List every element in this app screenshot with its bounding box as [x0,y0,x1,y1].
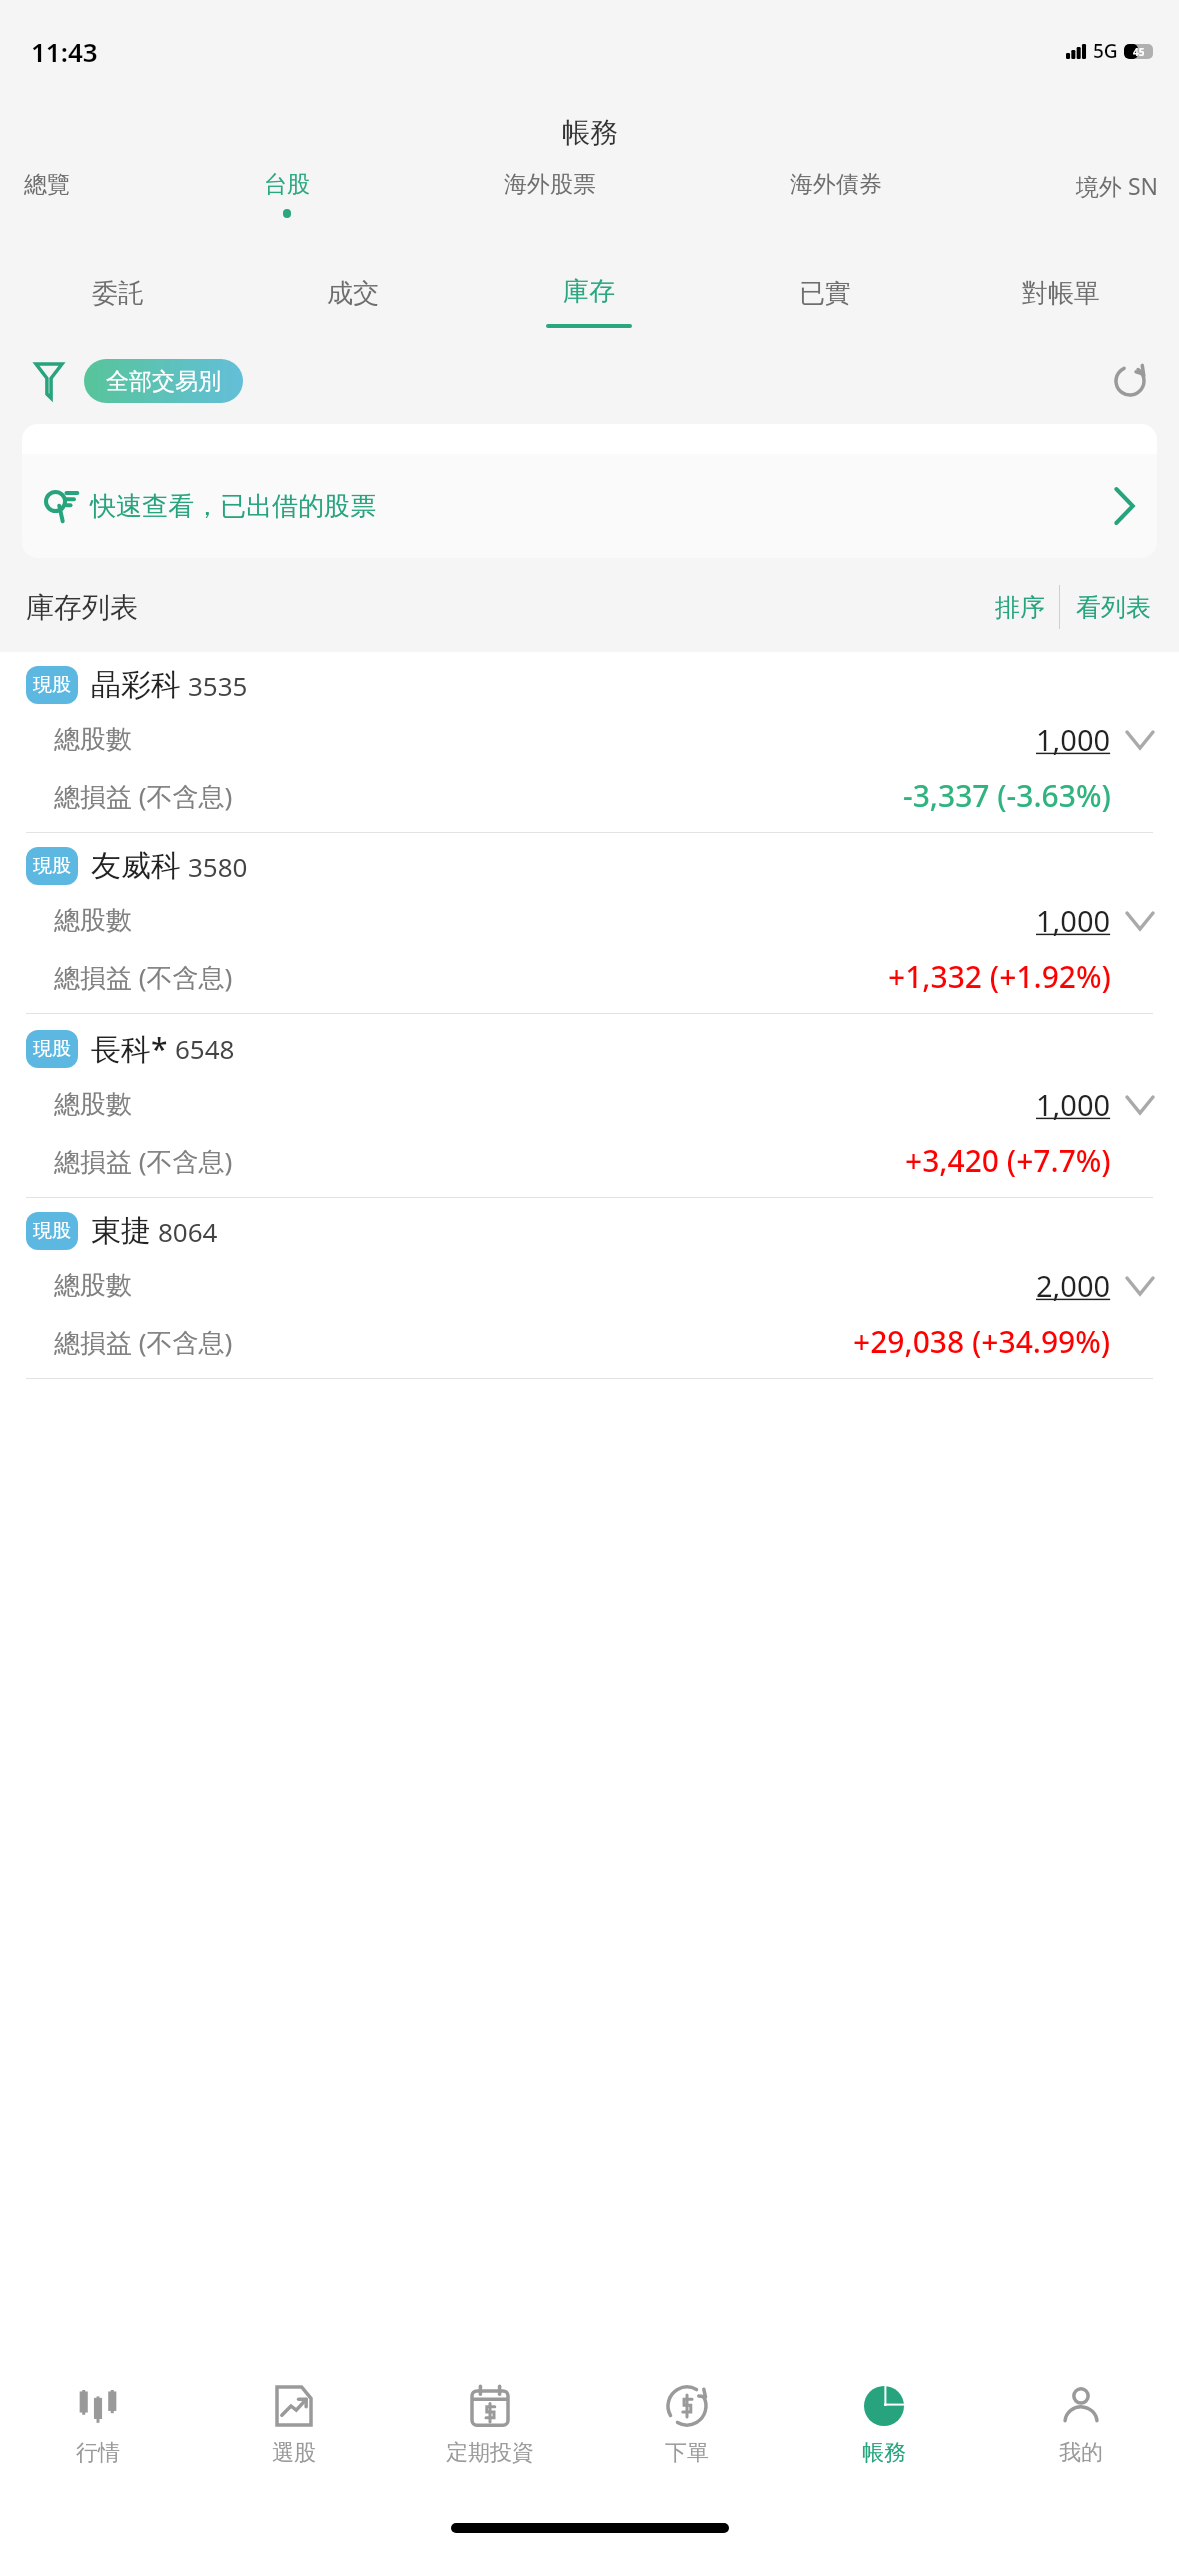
button[interactable]: 委託 [0,254,235,342]
staticText: 1,000 [1036,1085,1111,1124]
button[interactable]: 下單 [588,2350,785,2500]
staticText: 總損益 (不含息) [54,1324,233,1360]
staticText: 委託 [92,277,144,310]
button[interactable]: 定期投資 [392,2350,588,2500]
staticText: 總股數 [54,1269,132,1302]
staticText: 行情 [76,2439,120,2467]
staticText: 下單 [665,2439,709,2467]
staticText: 1,000 [1036,720,1111,759]
staticText: +3,420 (+7.7%) [905,1140,1111,1181]
button[interactable]: 排序 [981,586,1059,629]
staticText: 境外 SN [1076,170,1159,201]
button[interactable]: 行情 [0,2350,196,2500]
button[interactable]: 我的 [982,2350,1179,2500]
button[interactable]: 對帳單 [943,254,1179,342]
staticText: -3,337 (-3.63%) [903,775,1111,816]
staticText: 海外股票 [504,170,596,199]
staticText: 對帳單 [1022,277,1100,310]
staticText: 海外債券 [790,170,882,199]
staticText: 全部交易別 [106,367,221,396]
staticText: 8064 [158,1214,218,1249]
button[interactable]: 重新整理 [1103,354,1157,408]
staticText: +1,332 (+1.92%) [888,956,1111,997]
button[interactable]: 現股 [0,652,1179,832]
staticText: 看列表 [1076,592,1151,623]
staticText: 總損益 (不含息) [54,778,233,814]
button[interactable]: 海外債券 [780,170,892,209]
staticText: 已實 [799,277,851,310]
staticText: 成交 [327,277,379,310]
staticText: 台股 [264,170,310,199]
staticText: 帳務 [562,115,618,150]
button[interactable]: 庫存 [471,254,707,342]
staticText: 1,000 [1036,901,1111,940]
staticText: 東捷 [91,1212,151,1250]
staticText: 3580 [188,849,248,884]
button[interactable]: 帳務 [785,2350,982,2500]
button[interactable]: 選股 [196,2350,392,2500]
staticText: 帳務 [862,2439,906,2467]
staticText: 總損益 (不含息) [54,959,233,995]
button[interactable]: 海外股票 [494,170,606,209]
staticText: 我的 [1059,2439,1103,2467]
button[interactable]: 境外 SN [1066,170,1169,211]
staticText: 現股 [33,1219,71,1243]
button[interactable]: 現股 [0,833,1179,1013]
staticText: 快速查看，已出借的股票 [90,490,376,523]
button[interactable]: 台股 [254,170,320,218]
staticText: 總損益 (不含息) [54,1143,233,1179]
button[interactable]: 總覽 [14,170,80,209]
staticText: 晶彩科 [91,666,181,704]
staticText: 排序 [995,592,1045,623]
button[interactable]: 快速查看，已出借的股票 [22,424,1157,558]
button[interactable]: 成交 [235,254,471,342]
staticText: 2,000 [1036,1266,1111,1305]
button[interactable]: 看列表 [1060,586,1153,629]
staticText: 總覽 [24,170,70,199]
staticText: 45 [1133,45,1145,59]
staticText: 5G [1093,38,1118,64]
staticText: 3535 [188,668,248,703]
button[interactable]: 已實 [707,254,943,342]
staticText: 總股數 [54,723,132,756]
staticText: 長科* [91,1028,168,1069]
button[interactable]: 篩選 [22,354,76,408]
staticText: 選股 [272,2439,316,2467]
staticText: 庫存列表 [26,590,138,625]
staticText: 總股數 [54,1088,132,1121]
staticText: 現股 [33,1037,71,1061]
staticText: 11:43 [31,34,98,69]
staticText: 現股 [33,854,71,878]
staticText: 現股 [33,673,71,697]
staticText: 總股數 [54,904,132,937]
button[interactable]: 現股 [0,1198,1179,1378]
staticText: +29,038 (+34.99%) [853,1321,1111,1362]
button[interactable]: 全部交易別 [84,359,243,403]
staticText: 定期投資 [446,2439,534,2467]
staticText: 6548 [175,1031,235,1066]
staticText: 友威科 [91,847,181,885]
staticText: 庫存 [563,275,615,308]
button[interactable]: 現股 [0,1014,1179,1197]
